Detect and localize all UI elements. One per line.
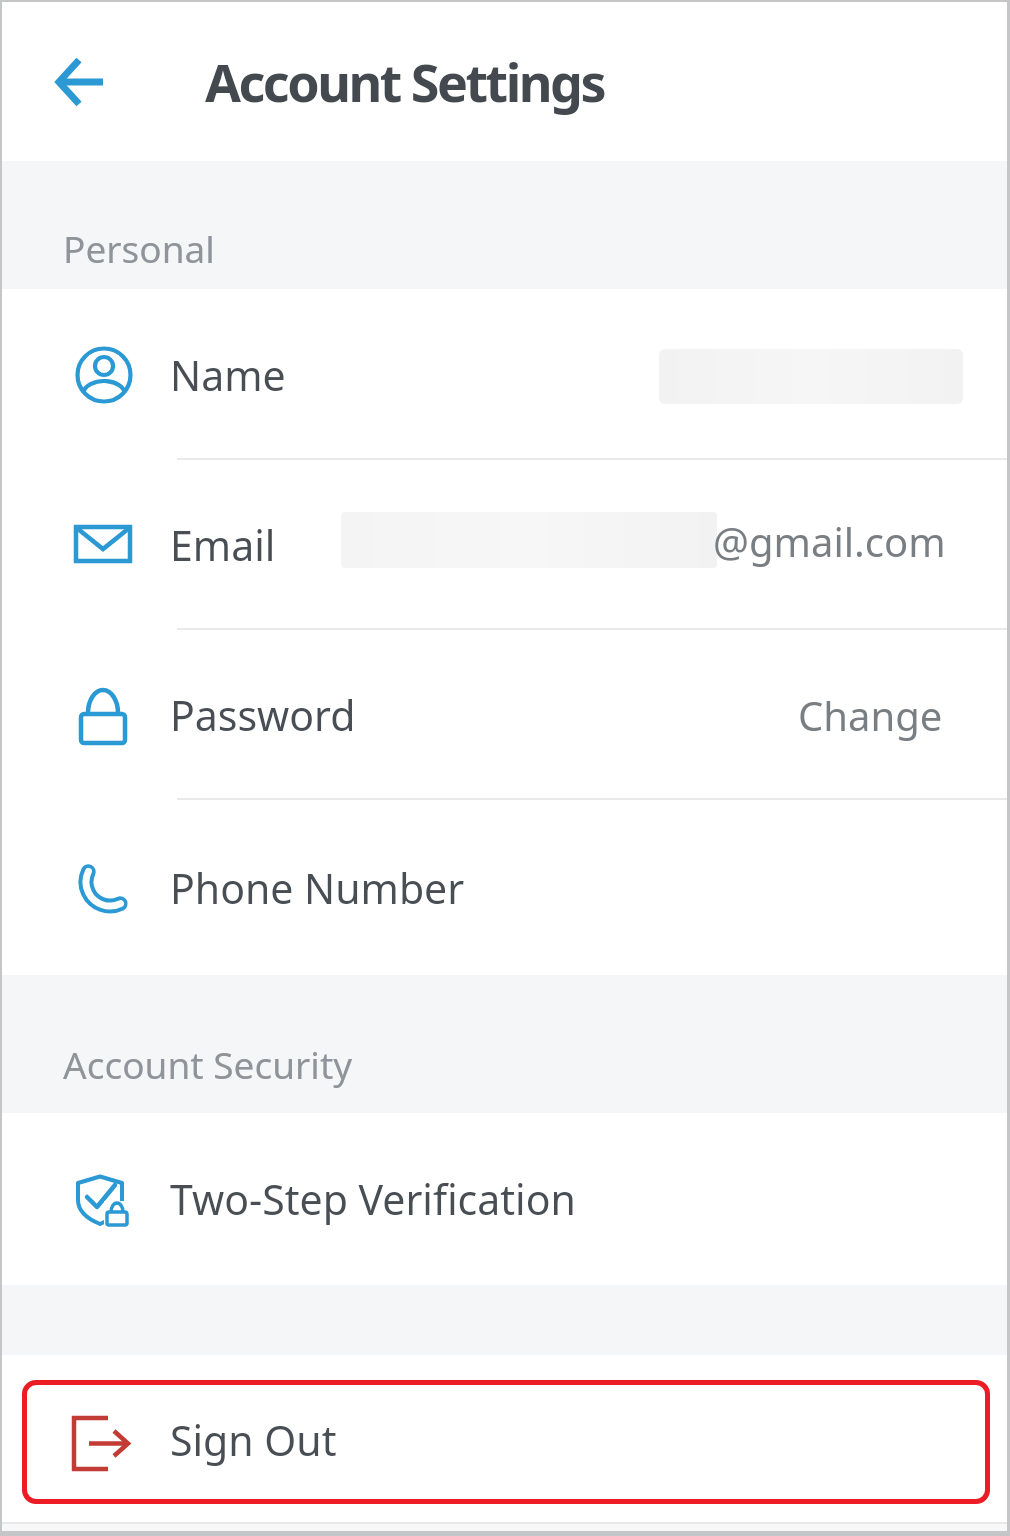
staticText: @gmail.com (713, 514, 946, 568)
staticText: Name (170, 347, 286, 403)
button[interactable]: Password (2, 630, 1007, 800)
staticText: Sign Out (170, 1412, 337, 1468)
button[interactable]: Two-Step Verification (2, 1113, 1007, 1285)
button[interactable]: Sign Out (2, 1355, 1007, 1524)
button[interactable]: Email (2, 460, 1007, 630)
staticText: Change (798, 688, 943, 742)
button[interactable]: Name (2, 289, 1007, 460)
staticText: Account Security (63, 1039, 353, 1089)
staticText: Phone Number (170, 860, 465, 916)
staticText: Personal (63, 223, 215, 273)
staticText: Account Settings (205, 46, 604, 117)
button[interactable] (46, 47, 116, 117)
staticText: Password (170, 687, 356, 743)
staticText: Two-Step Verification (170, 1171, 576, 1227)
staticText: Email (170, 517, 276, 573)
button[interactable]: Phone Number (2, 800, 1007, 975)
